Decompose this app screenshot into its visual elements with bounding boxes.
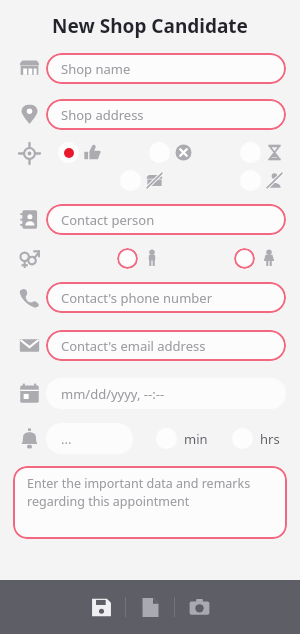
other: Contact	[12, 203, 46, 235]
button[interactable]: Option	[149, 142, 170, 163]
button[interactable]: No contact	[263, 169, 286, 192]
button[interactable]: Option	[117, 248, 138, 269]
button[interactable]: Camera	[175, 583, 223, 631]
button[interactable]: Shop address	[46, 99, 286, 130]
button[interactable]: Enter the important data and remarks reg…	[13, 466, 287, 539]
button[interactable]: ...	[46, 423, 133, 454]
button[interactable]: Option	[120, 170, 141, 191]
staticText: Contact person	[61, 211, 155, 229]
button[interactable]: Option	[240, 142, 261, 163]
button[interactable]: Shop name	[46, 53, 286, 84]
staticText: Shop address	[61, 106, 144, 124]
button[interactable]: Option	[240, 170, 261, 191]
staticText: New Shop Candidate	[52, 13, 248, 39]
other: Email	[12, 329, 46, 361]
button[interactable]: Male	[141, 247, 163, 269]
button[interactable]: Pending	[263, 141, 286, 164]
button[interactable]: Option	[234, 248, 255, 269]
staticText: hrs	[260, 430, 280, 448]
staticText: ...	[61, 430, 72, 448]
button[interactable]: Approved	[81, 141, 104, 164]
staticText: Contact's phone number	[61, 289, 212, 307]
staticText: Enter the important data and remarks reg…	[27, 475, 275, 510]
other: Date	[12, 377, 46, 409]
staticText: mm/dd/yyyy, --:--	[61, 385, 165, 403]
button[interactable]: Document	[126, 583, 174, 631]
button[interactable]: Save	[77, 583, 125, 631]
staticText: min	[184, 430, 208, 448]
button[interactable]: mm/dd/yyyy, --:--	[46, 378, 286, 409]
staticText: Shop name	[61, 60, 131, 78]
button[interactable]: Option	[232, 428, 253, 449]
button[interactable]: Contact's phone number	[46, 282, 286, 313]
other: Phone	[12, 281, 46, 313]
button[interactable]: Rejected	[172, 141, 195, 164]
button[interactable]: Option	[58, 142, 79, 163]
button[interactable]: Closed	[143, 169, 166, 192]
button[interactable]: Contact person	[46, 204, 286, 235]
button[interactable]: Option	[156, 428, 177, 449]
staticText: Contact's email address	[61, 337, 206, 355]
other: Shop	[12, 52, 46, 84]
other: Address	[12, 98, 46, 130]
button[interactable]: Contact's email address	[46, 330, 286, 361]
button[interactable]: Female	[258, 247, 280, 269]
